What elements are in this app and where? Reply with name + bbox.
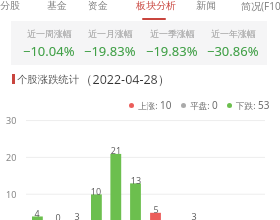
button[interactable]: 平盘: [181, 98, 218, 112]
staticText: 0 [212, 98, 218, 112]
staticText: 5 [146, 203, 166, 215]
staticText: 0 [48, 211, 68, 220]
staticText: （2022-04-28） [80, 71, 171, 88]
staticText: 简况(F10) [241, 0, 280, 13]
staticText: 13 [126, 174, 146, 186]
button[interactable]: 个股涨跌统计 [17, 73, 79, 86]
button[interactable]: 近一年涨幅 [202, 21, 264, 65]
staticText: −10.04% [23, 42, 75, 60]
staticText: 30 [6, 114, 17, 126]
button[interactable]: 简况(F10) [241, 0, 280, 13]
button[interactable]: 板块分析 [136, 0, 176, 12]
staticText: 基金 [47, 0, 67, 12]
staticText: 近一季涨幅 [150, 28, 195, 39]
staticText: −19.83% [84, 42, 136, 60]
staticText: 20 [6, 151, 17, 163]
staticText: 53 [258, 98, 270, 112]
staticText: 资金 [88, 0, 108, 12]
staticText: 4 [27, 207, 47, 219]
button[interactable]: 基金 [47, 0, 67, 12]
button[interactable]: 下跌: [227, 98, 270, 112]
staticText: 下跌: [236, 100, 256, 112]
button[interactable]: 分股 [0, 0, 20, 12]
staticText: 分股 [0, 0, 20, 12]
staticText: 10 [6, 188, 17, 200]
button[interactable]: 近一季涨幅 [141, 21, 203, 65]
staticText: 新闻 [196, 0, 216, 12]
staticText: 近一周涨幅 [27, 28, 72, 39]
staticText: 21 [106, 144, 126, 156]
button[interactable]: 上涨: [129, 98, 172, 112]
button[interactable]: 近一周涨幅 [18, 21, 80, 65]
staticText: −19.83% [146, 42, 198, 60]
button[interactable]: 资金 [88, 0, 108, 12]
staticText: 平盘: [190, 100, 210, 112]
staticText: 板块分析 [136, 0, 176, 12]
button[interactable]: 新闻 [196, 0, 216, 12]
staticText: 10 [160, 98, 172, 112]
staticText: 近一月涨幅 [88, 28, 133, 39]
staticText: 近一年涨幅 [211, 28, 256, 39]
staticText: 10 [86, 185, 106, 197]
button[interactable]: 近一月涨幅 [79, 21, 141, 65]
staticText: 个股涨跌统计 [17, 73, 79, 86]
staticText: −30.86% [207, 42, 259, 60]
staticText: 3 [184, 210, 204, 220]
staticText: 上涨: [138, 100, 158, 112]
staticText: 3 [67, 210, 87, 220]
